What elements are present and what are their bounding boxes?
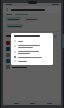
button[interactable]: Navigation item: [12, 101, 20, 105]
button[interactable]: More options: [3, 40, 61, 46]
button[interactable]: [14, 43, 50, 49]
button[interactable]: More options: [3, 64, 61, 70]
button[interactable]: Sort: [53, 34, 57, 38]
button[interactable]: More options: [3, 52, 61, 58]
button[interactable]: [14, 39, 50, 43]
button[interactable]: More options: [3, 58, 61, 64]
button[interactable]: Navigation item: [45, 101, 53, 105]
button[interactable]: [14, 49, 50, 55]
button[interactable]: Back: [3, 6, 61, 13]
button[interactable]: [14, 55, 50, 59]
button[interactable]: [6, 24, 23, 28]
button[interactable]: More options: [3, 46, 61, 52]
button[interactable]: Navigation item: [28, 101, 36, 105]
button[interactable]: [24, 17, 39, 21]
button[interactable]: Back: [5, 7, 10, 12]
button[interactable]: [6, 17, 21, 21]
button[interactable]: [14, 59, 50, 63]
